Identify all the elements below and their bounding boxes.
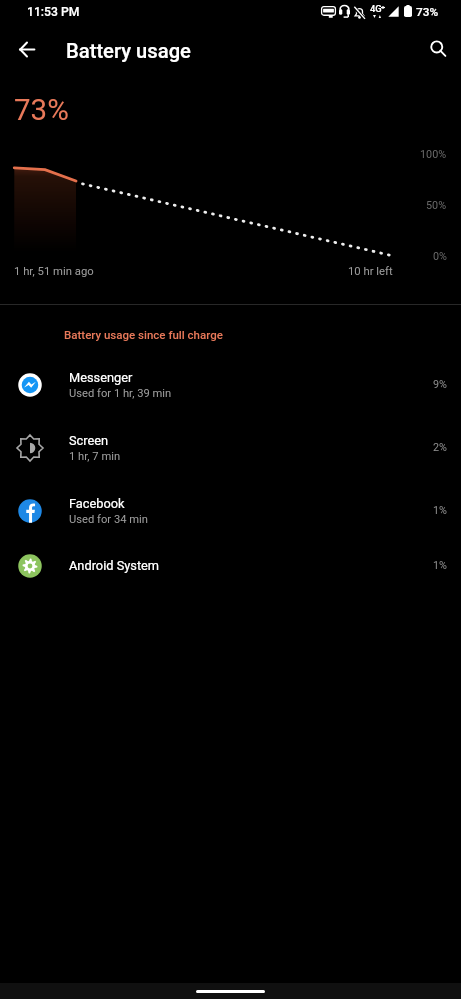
staticText: Used for 34 min (69, 513, 148, 526)
staticText: Android System (69, 558, 160, 573)
staticText: 73% (14, 93, 69, 128)
staticText: 73% (416, 5, 439, 19)
staticText: 9% (433, 378, 447, 391)
button[interactable]: Facebook (0, 479, 461, 542)
staticText: 1% (433, 504, 447, 517)
staticText: Battery usage (66, 39, 191, 63)
staticText: Battery usage since full charge (64, 328, 223, 341)
staticText: Facebook (69, 496, 125, 511)
staticText: Messenger (69, 370, 133, 385)
staticText: 11:53 PM (27, 5, 80, 19)
staticText: 2% (433, 441, 447, 454)
staticText: 50% (426, 199, 447, 212)
staticText: Used for 1 hr, 39 min (69, 387, 172, 400)
staticText: 100% (420, 148, 447, 161)
button[interactable]: Back (7, 29, 47, 69)
staticText: 4G (370, 3, 382, 14)
staticText: 0% (433, 250, 447, 263)
button[interactable]: Screen (0, 416, 461, 479)
button[interactable]: Android System (0, 542, 461, 589)
staticText: 10 hr left (348, 265, 393, 278)
staticText: Screen (69, 433, 109, 448)
staticText: 1 hr, 7 min (69, 450, 121, 463)
staticText: 1 hr, 51 min ago (14, 265, 94, 278)
button[interactable]: Search (419, 29, 459, 69)
button[interactable]: Messenger (0, 353, 461, 416)
staticText: 1% (433, 559, 447, 572)
